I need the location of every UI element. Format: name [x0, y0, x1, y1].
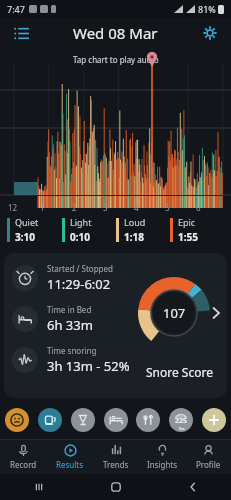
staticText: 3h 13m - 52%: [47, 357, 130, 375]
staticText: lbs: [179, 426, 185, 431]
staticText: Snore Score: [146, 364, 213, 380]
staticText: 1:55: [178, 230, 198, 244]
staticText: 107: [163, 304, 186, 322]
staticText: 5: [165, 202, 196, 213]
button[interactable]: Bed: [104, 408, 128, 432]
button[interactable]: Meal: [136, 408, 160, 432]
button[interactable]: Record: [0, 440, 47, 474]
staticText: Epic: [178, 216, 196, 228]
staticText: Record: [10, 459, 37, 470]
button[interactable]: Weight: [169, 408, 193, 432]
button[interactable]: Results: [47, 440, 93, 474]
button[interactable]: Quiet: [7, 216, 62, 244]
staticText: 4: [134, 202, 165, 213]
staticText: Light: [70, 216, 92, 228]
staticText: Profile: [196, 459, 221, 470]
staticText: Loud: [124, 216, 146, 228]
staticText: 7:47: [7, 3, 25, 15]
staticText: 3: [103, 202, 134, 213]
staticText: Wed 08 Mar: [73, 23, 158, 43]
staticText: 1: [40, 202, 72, 213]
staticText: Time in Bed: [47, 304, 92, 315]
staticText: 12: [8, 202, 40, 213]
button[interactable]: Profile: [185, 440, 231, 474]
staticText: Quiet: [15, 216, 39, 228]
staticText: Insights: [147, 459, 178, 470]
button[interactable]: Light: [62, 216, 116, 244]
button[interactable]: Menu: [8, 20, 34, 46]
staticText: Trends: [103, 459, 129, 470]
staticText: 2: [72, 202, 103, 213]
staticText: 1:18: [124, 230, 144, 244]
staticText: Results: [56, 459, 84, 470]
button[interactable]: Caffeine: [38, 408, 62, 432]
button[interactable]: More: [207, 304, 225, 322]
button[interactable]: Insights: [139, 440, 185, 474]
button[interactable]: Epic: [170, 216, 224, 244]
button[interactable]: Settings: [197, 20, 223, 46]
button[interactable]: Mood: [5, 408, 29, 432]
button[interactable]: Alcohol: [71, 408, 95, 432]
button[interactable]: Started / Stopped: [4, 253, 227, 398]
staticText: 225: [175, 416, 188, 426]
staticText: Time snoring: [47, 345, 97, 356]
staticText: 81%: [198, 3, 216, 15]
staticText: 0:10: [70, 230, 90, 244]
button[interactable]: Add: [202, 408, 226, 432]
staticText: Tap chart to play audio: [73, 54, 159, 65]
button[interactable]: Trends: [93, 440, 139, 474]
staticText: 3:10: [15, 230, 35, 244]
staticText: Started / Stopped: [47, 263, 113, 274]
staticText: 11:29-6:02: [47, 275, 111, 293]
staticText: 6: [196, 202, 227, 213]
button[interactable]: Loud: [116, 216, 170, 244]
staticText: 6h 33m: [47, 316, 93, 334]
